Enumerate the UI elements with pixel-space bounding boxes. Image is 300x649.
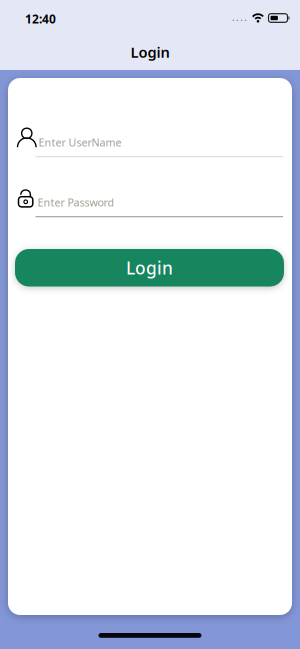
staticText: Enter UserName [38, 135, 121, 149]
staticText: Login [126, 256, 173, 279]
textField[interactable]: Enter UserName [38, 135, 286, 149]
button[interactable]: Login [15, 249, 284, 286]
staticText: 12:40 [25, 11, 56, 27]
staticText: Enter Password [37, 195, 114, 209]
staticText: Login [130, 42, 169, 62]
textField[interactable]: Enter Password [37, 195, 285, 209]
